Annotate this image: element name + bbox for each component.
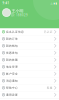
- button[interactable]: 实名认证信息: [0, 28, 59, 35]
- staticText: △ ◗ ▮: [50, 2, 56, 5]
- button[interactable]: 通用设置: [0, 91, 59, 98]
- staticText: 账户安全: [6, 72, 18, 75]
- button[interactable]: 账户安全: [0, 70, 59, 77]
- button[interactable]: 帮助中心: [0, 84, 59, 91]
- button[interactable]: 优惠券包: [0, 49, 59, 56]
- staticText: 客服: [47, 86, 53, 89]
- button[interactable]: 我的钱包: [0, 42, 59, 49]
- button[interactable]: 地址管理: [0, 63, 59, 70]
- staticText: 通用设置: [6, 93, 18, 96]
- button[interactable]: 消息通知: [0, 77, 59, 84]
- staticText: 实名认证信息: [6, 30, 24, 33]
- button[interactable]: 我的订单: [0, 35, 59, 42]
- staticText: 我的订单: [6, 37, 18, 40]
- staticText: 我的收藏: [6, 58, 18, 61]
- staticText: 帮助中心: [6, 86, 18, 89]
- staticText: ID: 188029: [11, 13, 28, 17]
- staticText: 已认证: [44, 30, 53, 33]
- staticText: 王小明: [11, 8, 23, 13]
- staticText: 我的钱包: [6, 44, 18, 47]
- staticText: 优惠券包: [6, 51, 18, 54]
- button[interactable]: 我的收藏: [0, 56, 59, 63]
- staticText: 消息通知: [6, 79, 18, 82]
- staticText: 地址管理: [6, 65, 18, 68]
- staticText: 9:41: [3, 1, 10, 5]
